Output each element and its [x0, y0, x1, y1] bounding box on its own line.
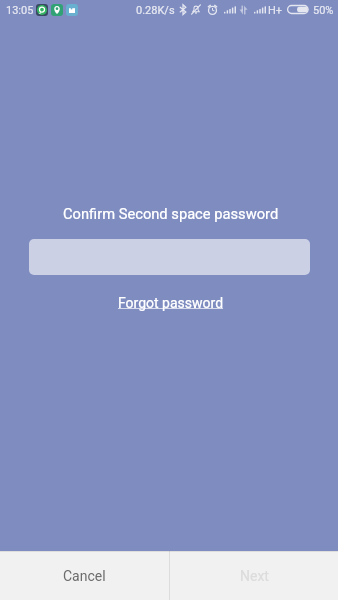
button[interactable]: Cancel — [0, 551, 169, 600]
staticText: Next — [240, 568, 269, 584]
button[interactable]: Next — [170, 551, 338, 600]
staticText: Cancel — [63, 568, 106, 584]
staticText: 50% — [313, 4, 334, 17]
staticText: 13:05 — [6, 4, 34, 17]
staticText: Confirm Second space password — [63, 205, 279, 222]
staticText: H+ — [268, 4, 283, 17]
staticText: 0.28K/s — [136, 4, 175, 17]
staticText: Forgot password — [118, 295, 224, 311]
button[interactable]: Password input field — [29, 239, 310, 275]
button[interactable]: Forgot password — [118, 295, 224, 311]
